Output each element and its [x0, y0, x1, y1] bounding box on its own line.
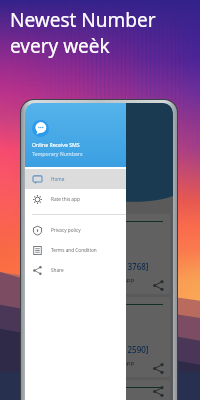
button[interactable]: Home	[25, 169, 126, 189]
button[interactable]: Privacy policy	[25, 220, 126, 240]
staticText: Online	[34, 131, 75, 149]
staticText: Share	[51, 267, 64, 273]
staticText: Online Receive SMS	[32, 141, 80, 148]
staticText: every weèk	[10, 33, 110, 59]
staticText: Temporary Numbers	[32, 150, 83, 157]
staticText: Rate this app	[51, 196, 80, 202]
staticText: Privacy policy	[51, 227, 81, 233]
staticText: Home	[51, 176, 65, 182]
button[interactable]: Receive SMS On [+1 206 2590]	[28, 297, 170, 377]
button[interactable]: Share	[153, 363, 164, 374]
button[interactable]: Receive SMS On [+1 785 3768]	[28, 214, 170, 294]
staticText: Verify for any social, Gmail, WhatsApp o…	[34, 159, 102, 185]
staticText: Terms and Condition	[51, 247, 97, 253]
staticText: Receive Free SMS Online Egypt App	[35, 359, 135, 367]
button[interactable]: Share	[153, 280, 164, 291]
button[interactable]: Terms and Condition	[25, 240, 126, 260]
staticText: Receive SMS On [+1 785 3768]	[35, 261, 149, 272]
staticText: Receive Free SMS Online Egypt App	[35, 276, 135, 284]
staticText: Receive SMS On [+1 206 2590]	[35, 344, 149, 355]
button[interactable]: Receive SMS On [+1 332 8814]	[28, 380, 170, 400]
button[interactable]: Rate this app	[25, 189, 126, 209]
staticText: Newest Number	[10, 7, 156, 33]
button[interactable]: Share	[153, 386, 164, 397]
button[interactable]: Share	[25, 260, 126, 280]
